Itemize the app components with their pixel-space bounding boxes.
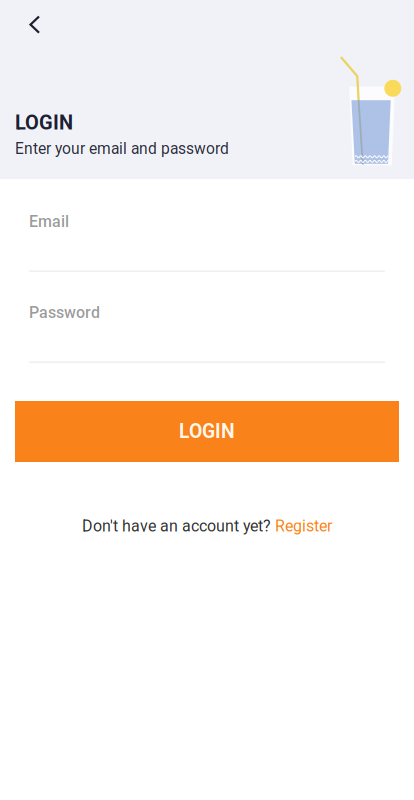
staticText: LOGIN (15, 111, 73, 134)
staticText: Enter your email and password (15, 139, 229, 158)
staticText: Email (29, 212, 69, 231)
staticText: Password (29, 303, 100, 322)
staticText: Register (275, 517, 332, 535)
button[interactable]: Don't have an account yet? (15, 512, 399, 540)
staticText: Don't have an account yet? (82, 517, 275, 535)
staticText: LOGIN (179, 420, 235, 443)
button[interactable]: LOGIN (15, 401, 399, 462)
button[interactable]: Back (18, 8, 52, 42)
